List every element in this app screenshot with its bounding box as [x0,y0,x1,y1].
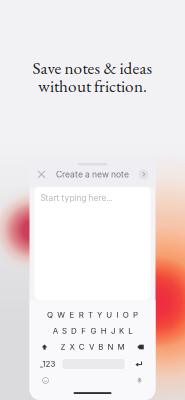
button[interactable]: Shift [38,342,50,352]
staticText: Y [97,310,102,320]
staticText: L [128,326,132,336]
staticText: V [89,342,94,352]
staticText: N [107,342,113,352]
staticText: I [116,310,118,320]
staticText: C [79,342,85,352]
staticText: D [71,326,77,336]
staticText: G [90,326,96,336]
button[interactable]: Dictate [132,376,146,385]
button[interactable]: Save note [136,168,150,180]
staticText: U [106,310,112,320]
staticText: P [133,310,138,320]
staticText: Create a new note [56,169,129,179]
staticText: X [70,342,75,352]
staticText: _123 [39,359,55,369]
staticText: R [79,310,84,320]
staticText: Start typing here... [40,193,112,203]
staticText: H [101,326,107,336]
staticText: A [53,326,58,336]
button[interactable]: Emoji [38,376,52,385]
staticText: E [69,310,74,320]
staticText: O [123,310,129,320]
staticText: B [98,342,103,352]
staticText: Q [47,310,53,320]
staticText: Save notes & ideas [32,57,152,79]
staticText: without friction. [38,75,147,97]
button[interactable]: Close [34,168,48,180]
staticText: J [111,326,115,336]
button[interactable]: _123 [38,359,56,369]
staticText: S [62,326,67,336]
staticText: F [81,326,86,336]
staticText: T [88,310,93,320]
staticText: W [57,310,65,320]
staticText: Z [60,342,65,352]
button[interactable]: Delete [134,342,146,352]
staticText: K [119,326,124,336]
staticText: M [118,342,125,352]
button[interactable]: Return [130,359,146,369]
